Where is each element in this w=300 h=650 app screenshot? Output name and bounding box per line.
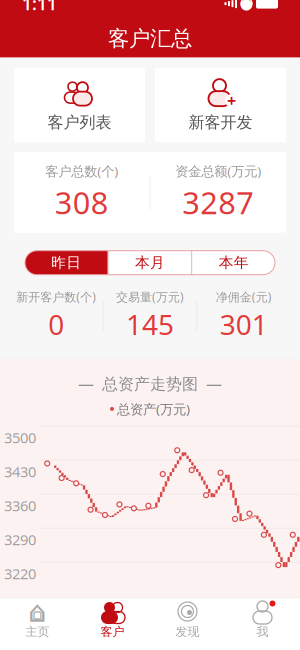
staticText: 3220 [4,564,36,583]
staticText: 308 [55,182,109,223]
staticText: 客户列表 [47,113,111,132]
button[interactable]: 客户列表 [14,68,145,142]
staticText: 本年 [219,254,249,272]
staticText: 发现 [175,624,199,639]
button[interactable]: 昨日 [25,251,108,275]
staticText: 新客开发 [188,113,252,132]
staticText: 0 [48,306,64,343]
staticText: 客户 [100,624,124,639]
staticText: 总资产(万元) [117,400,190,418]
staticText: 主页 [25,624,49,639]
staticText: 301 [220,306,268,343]
staticText: ⌂ [28,595,47,628]
staticText: 1:11 [22,0,57,15]
staticText: 资金总额(万元) [175,162,261,180]
button[interactable]: 我 [225,596,300,644]
button[interactable]: 客户 [75,596,150,644]
staticText: 3500 [4,428,36,447]
staticText: ● [240,0,253,12]
staticText: 3360 [4,496,36,515]
staticText: 我 [256,624,268,639]
staticText: 本月 [135,254,165,272]
staticText: 昨日 [51,254,81,272]
staticText: 净佣金(元) [216,289,272,305]
button[interactable]: 本年 [192,251,275,275]
staticText: 客户总数(个) [45,162,118,180]
staticText: 3430 [4,462,36,481]
button[interactable]: ⌂ [0,596,75,644]
staticText: 145 [126,306,174,343]
staticText: — 总资产走势图 — [78,373,222,394]
button[interactable]: + [155,68,286,142]
staticText: 新开客户数(个) [16,289,96,305]
staticText: 3287 [182,182,254,223]
staticText: 3290 [4,530,36,549]
staticText: 客户汇总 [108,25,192,52]
button[interactable]: 发现 [150,596,225,644]
staticText: 交易量(万元) [116,289,184,305]
button[interactable]: 本月 [109,251,191,275]
staticText: + [227,90,236,111]
